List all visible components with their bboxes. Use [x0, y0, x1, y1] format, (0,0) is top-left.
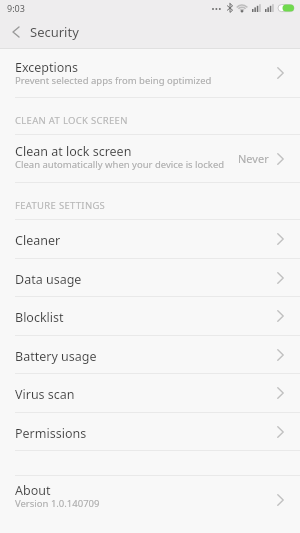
button[interactable]: Battery usage [0, 336, 300, 373]
button[interactable]: Data usage [0, 259, 300, 296]
staticText: Clean automatically when your device is … [15, 158, 225, 171]
staticText: Blocklist [15, 309, 64, 326]
button[interactable]: Virus scan [0, 374, 300, 412]
button[interactable]: Permissions [0, 413, 300, 450]
staticText: 9:03 [7, 2, 25, 14]
staticText: About [15, 482, 51, 499]
staticText: Cleaner [15, 232, 61, 249]
button[interactable]: Clean at lock screen [0, 135, 300, 182]
staticText: Exceptions [15, 59, 79, 76]
staticText: Permissions [15, 425, 87, 442]
staticText: Data usage [15, 271, 82, 288]
staticText: Prevent selected apps from being optimiz… [15, 74, 212, 87]
button[interactable]: Exceptions [0, 49, 300, 97]
button[interactable]: Cleaner [0, 220, 300, 258]
staticText: CLEAN AT LOCK SCREEN [15, 114, 128, 127]
staticText: Security [30, 23, 79, 41]
staticText: Never [238, 151, 269, 166]
staticText: Version 1.0.140709 [15, 497, 100, 510]
button[interactable]: Security [12, 16, 300, 48]
button[interactable]: About [0, 476, 300, 523]
staticText: FEATURE SETTINGS [15, 199, 106, 212]
staticText: Battery usage [15, 348, 97, 365]
button[interactable]: Blocklist [0, 297, 300, 335]
staticText: Virus scan [15, 386, 75, 403]
staticText: Clean at lock screen [15, 143, 132, 160]
